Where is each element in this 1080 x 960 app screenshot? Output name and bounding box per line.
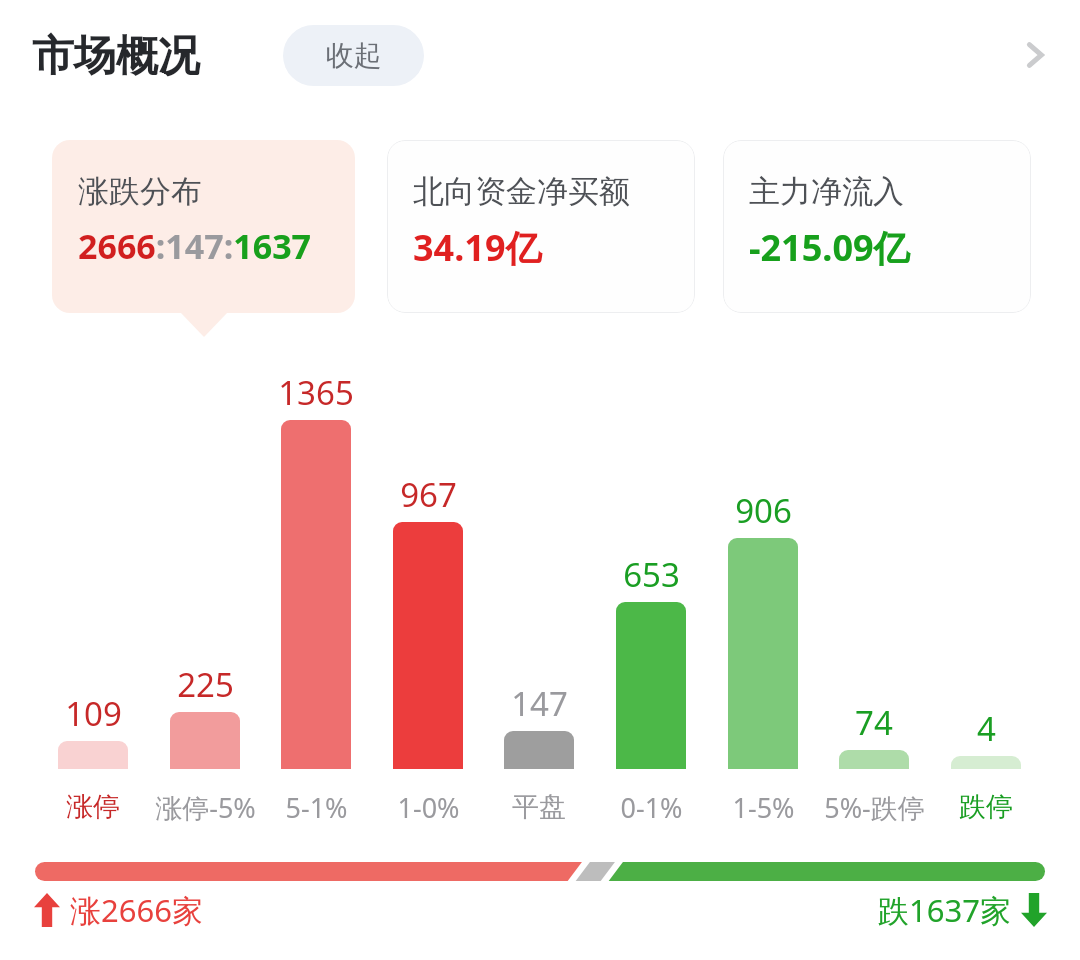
button[interactable] — [728, 538, 798, 769]
staticText: 5-1% — [285, 789, 348, 826]
staticText: 2666:147:1637 — [78, 223, 312, 269]
button[interactable]: 主力净流入 — [723, 140, 1031, 313]
button[interactable]: 市场概况 — [32, 25, 200, 87]
staticText: 74 — [855, 700, 893, 745]
button[interactable]: 涨跌分布 — [52, 140, 355, 313]
staticText: 平盘 — [512, 790, 566, 824]
button[interactable]: More — [1000, 20, 1070, 90]
staticText: 涨停 — [66, 790, 120, 824]
button[interactable]: 收起 — [283, 25, 424, 86]
staticText: 967 — [400, 472, 457, 517]
button[interactable] — [170, 712, 240, 769]
button[interactable] — [58, 741, 128, 769]
staticText: 跌停 — [959, 790, 1013, 824]
staticText: 涨跌分布 — [78, 172, 202, 211]
staticText: 1365 — [278, 370, 354, 415]
staticText: 跌1637家 — [878, 889, 1011, 931]
staticText: 涨2666家 — [70, 889, 203, 931]
button[interactable]: 涨2666家 — [34, 888, 203, 932]
staticText: 北向资金净买额 — [413, 172, 630, 211]
button[interactable]: 跌1637家 — [878, 888, 1047, 932]
staticText: 1-5% — [732, 789, 795, 826]
staticText: 0-1% — [620, 789, 683, 826]
staticText: -215.09亿 — [749, 223, 910, 272]
staticText: 34.19亿 — [413, 223, 542, 272]
staticText: 653 — [623, 552, 680, 597]
staticText: 109 — [65, 691, 122, 736]
staticText: 主力净流入 — [749, 172, 904, 211]
staticText: 225 — [177, 662, 234, 707]
staticText: 涨停-5% — [155, 789, 256, 826]
staticText: 906 — [735, 488, 792, 533]
staticText: 147 — [511, 681, 568, 726]
button[interactable] — [839, 750, 909, 769]
staticText: 4 — [977, 706, 996, 751]
button[interactable] — [393, 522, 463, 769]
staticText: 1-0% — [397, 789, 460, 826]
button[interactable] — [616, 602, 686, 769]
button[interactable] — [951, 756, 1021, 769]
staticText: 5%-跌停 — [824, 789, 925, 826]
staticText: 市场概况 — [32, 30, 200, 83]
staticText: 收起 — [326, 38, 382, 73]
button[interactable]: 北向资金净买额 — [387, 140, 695, 313]
button[interactable] — [504, 731, 574, 769]
button[interactable] — [281, 420, 351, 769]
